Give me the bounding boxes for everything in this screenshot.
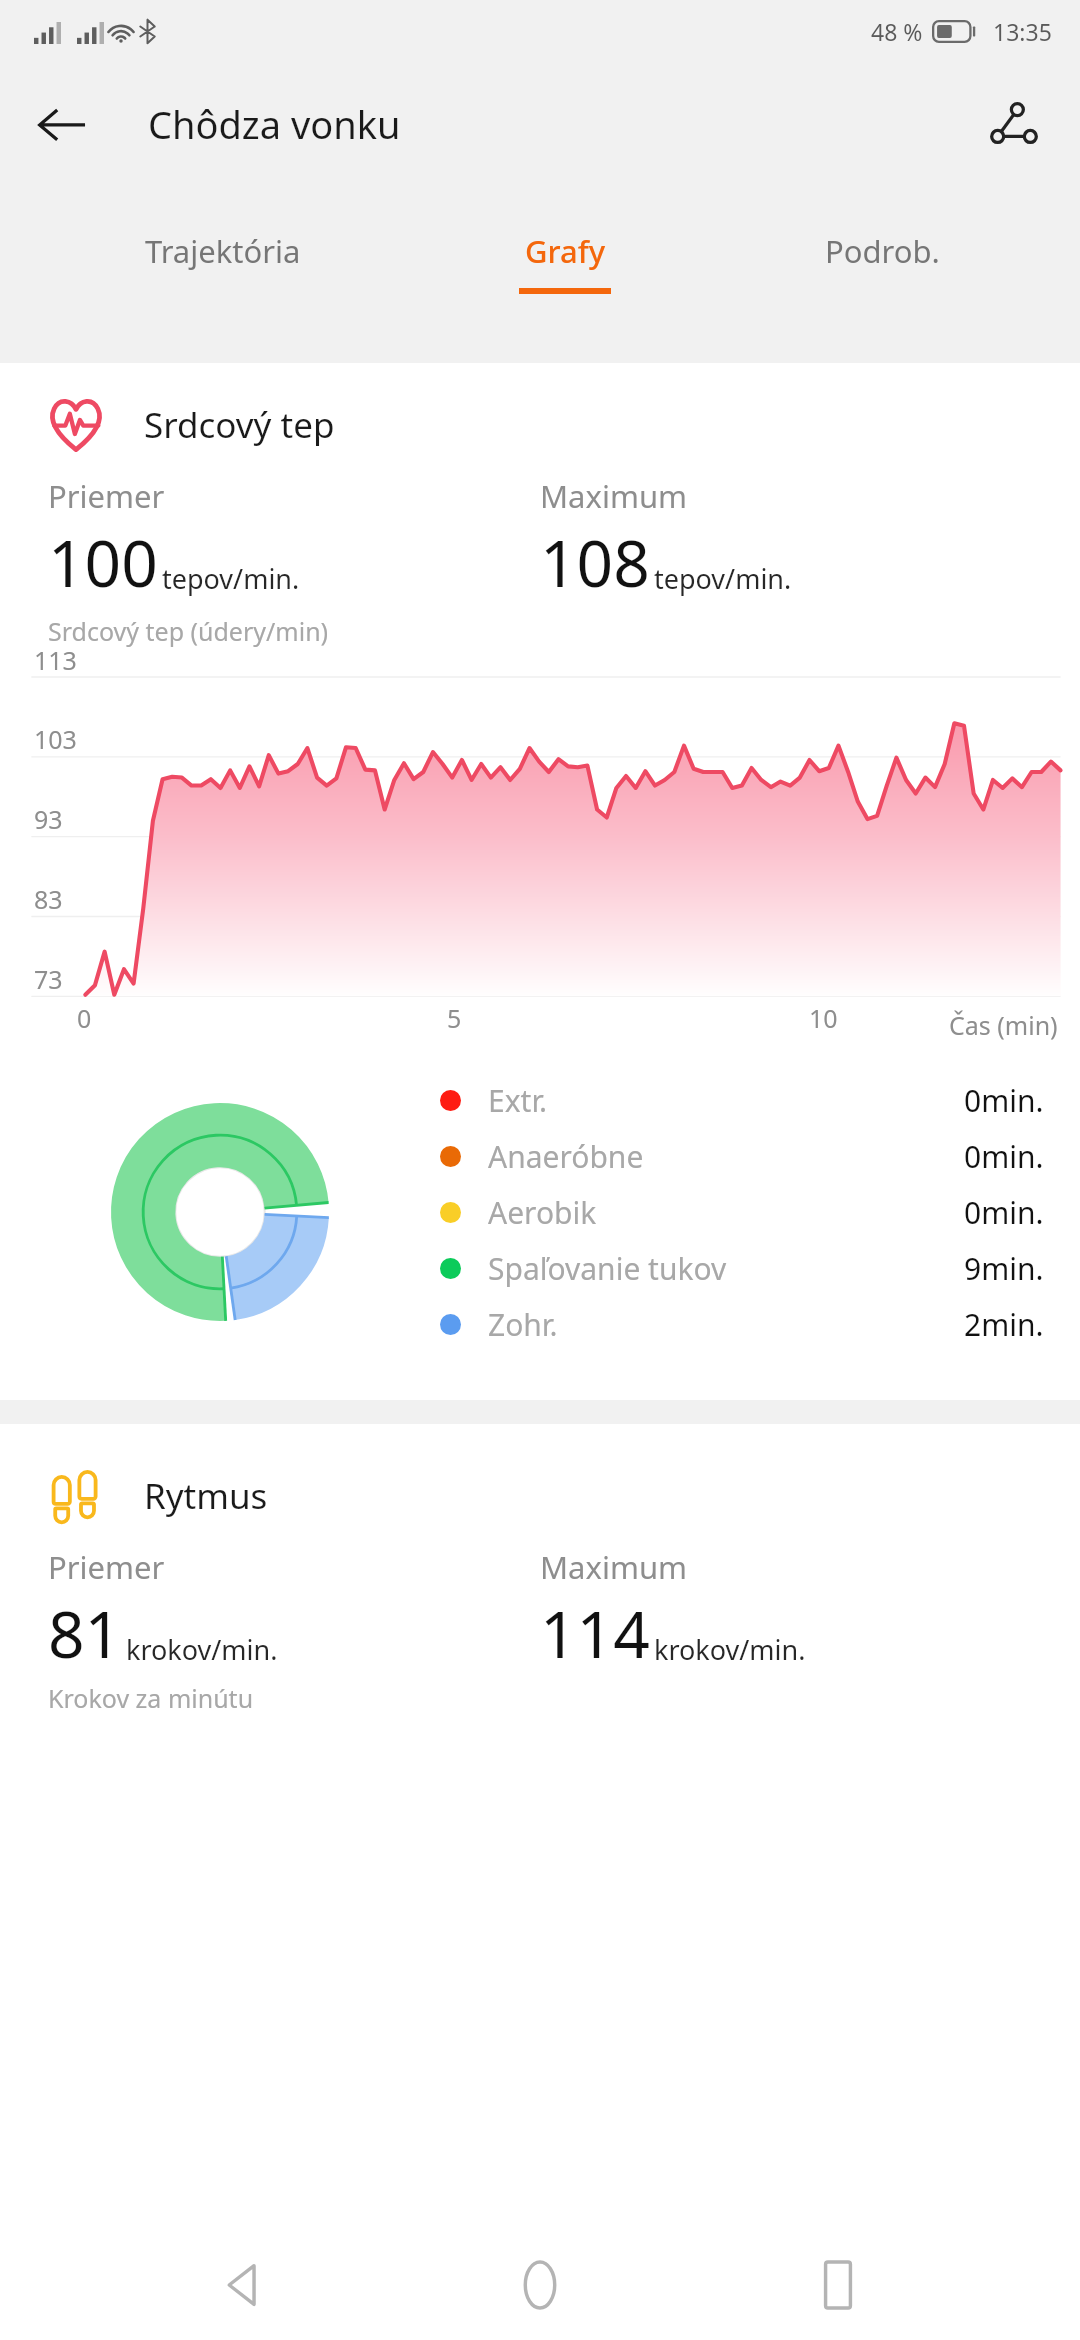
button[interactable]: Podrob.	[701, 186, 1064, 363]
staticText: Podrob.	[825, 230, 940, 272]
button[interactable]: Anaeróbne	[440, 1128, 1044, 1184]
button[interactable]: Aerobik	[440, 1184, 1044, 1240]
staticText: Srdcový tep (údery/min)	[48, 614, 329, 648]
staticText: Priemer	[48, 1546, 165, 1588]
staticText: 48 %	[871, 16, 923, 47]
staticText: 103	[34, 722, 77, 756]
staticText: Zohr.	[488, 1304, 964, 1345]
staticText: 114	[540, 1590, 650, 1677]
staticText: 93	[34, 802, 63, 836]
staticText: Čas (min)	[949, 1008, 1058, 1042]
staticText: Aerobik	[488, 1192, 964, 1233]
staticText: 9min.	[964, 1248, 1044, 1289]
staticText: 10	[809, 1001, 838, 1035]
staticText: krokov/min.	[654, 1631, 806, 1668]
button[interactable]: Extr.	[440, 1072, 1044, 1128]
staticText: tepov/min.	[162, 560, 300, 597]
staticText: 0min.	[964, 1080, 1044, 1121]
staticText: 0	[77, 1001, 92, 1035]
button[interactable]: Domov	[485, 2230, 595, 2340]
staticText: 5	[447, 1001, 462, 1035]
staticText: 81	[48, 1590, 122, 1677]
staticText: Spaľovanie tukov	[488, 1248, 964, 1289]
button[interactable]: Prehľad aplikácií	[783, 2230, 893, 2340]
button[interactable]: Trajektória	[16, 186, 429, 363]
staticText: Trajektória	[145, 230, 301, 272]
staticText: Grafy	[525, 230, 606, 272]
staticText: tepov/min.	[654, 560, 792, 597]
staticText: 0min.	[964, 1136, 1044, 1177]
staticText: 113	[34, 643, 77, 677]
staticText: 0min.	[964, 1192, 1044, 1233]
staticText: Priemer	[48, 475, 165, 517]
staticText: 83	[34, 882, 63, 916]
button[interactable]: Späť	[18, 80, 106, 168]
button[interactable]: Späť	[188, 2230, 298, 2340]
staticText: Srdcový tep	[144, 401, 335, 449]
staticText: 108	[540, 519, 650, 606]
staticText: Anaeróbne	[488, 1136, 964, 1177]
staticText: Maximum	[540, 1546, 688, 1588]
staticText: 13:35	[993, 16, 1052, 47]
button[interactable]: Grafy	[429, 186, 701, 363]
staticText: Extr.	[488, 1080, 964, 1121]
staticText: 100	[48, 519, 158, 606]
button[interactable]: Zdieľať	[970, 80, 1058, 168]
staticText: Krokov za minútu	[48, 1681, 254, 1715]
staticText: krokov/min.	[126, 1631, 278, 1668]
staticText: Maximum	[540, 475, 688, 517]
staticText: Rytmus	[144, 1472, 268, 1520]
button[interactable]: Spaľovanie tukov	[440, 1240, 1044, 1296]
staticText: Chôdza vonku	[148, 98, 401, 150]
staticText: 2min.	[964, 1304, 1044, 1345]
staticText: 73	[34, 962, 63, 996]
button[interactable]: Zohr.	[440, 1296, 1044, 1352]
